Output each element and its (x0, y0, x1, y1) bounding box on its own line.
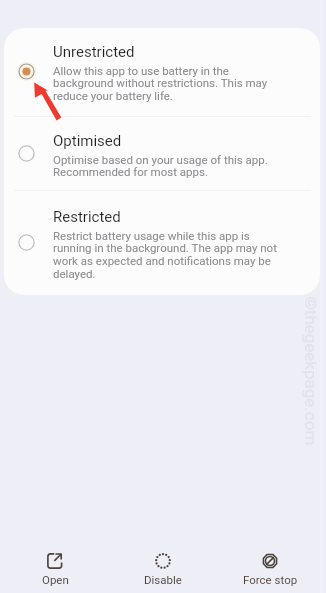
staticText: Unrestricted (53, 43, 135, 61)
staticText: Restricted (53, 208, 121, 226)
staticText: Open (42, 573, 69, 586)
button[interactable]: Disable (129, 547, 197, 592)
staticText: Force stop (243, 573, 298, 586)
staticText: Restrict battery usage while this app is… (53, 229, 285, 281)
staticText: ©thegeekpage.com (300, 296, 320, 445)
button[interactable]: Optimised (4, 117, 320, 190)
staticText: Optimised (53, 132, 122, 150)
button[interactable]: Open (21, 547, 89, 592)
button[interactable]: Unrestricted (4, 28, 320, 116)
button[interactable]: Force stop (236, 547, 304, 592)
button[interactable]: Restricted (4, 191, 320, 295)
staticText: Allow this app to use battery in the bac… (53, 64, 285, 103)
staticText: Disable (144, 573, 182, 586)
staticText: Optimise based on your usage of this app… (53, 153, 285, 179)
